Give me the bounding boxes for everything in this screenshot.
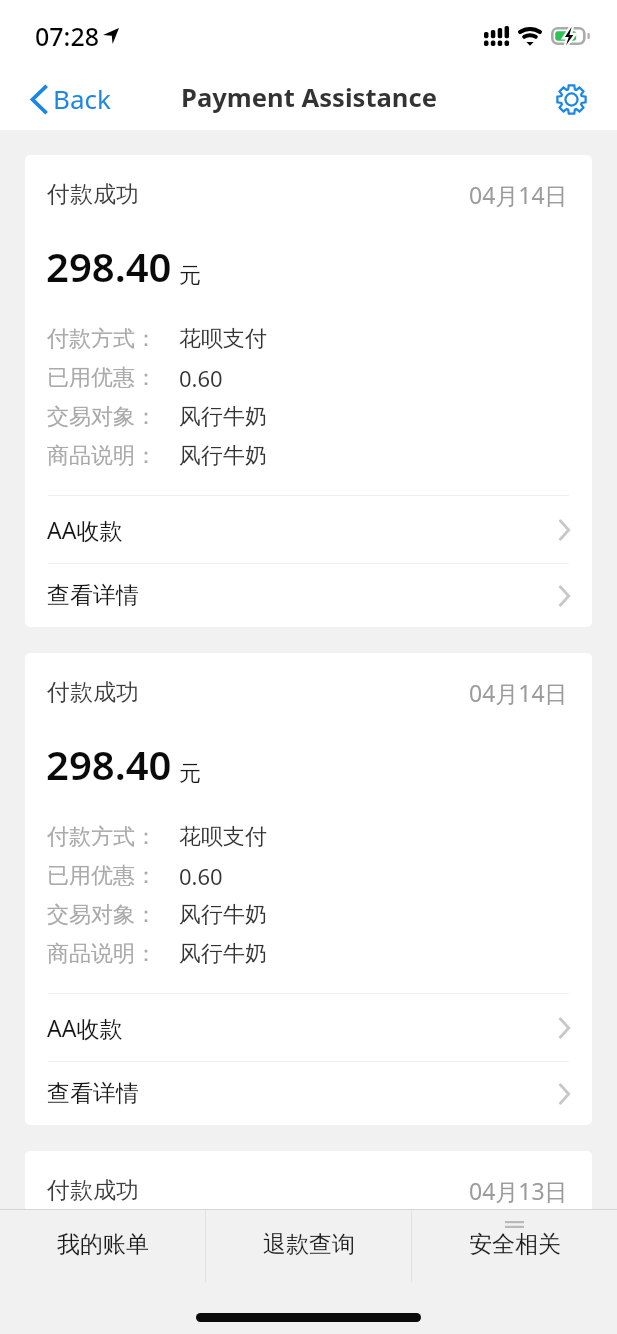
button[interactable]: 查看详情	[25, 564, 592, 627]
staticText: 0.60	[179, 861, 223, 891]
staticText: 风行牛奶	[179, 901, 267, 929]
button[interactable]: AA收款	[25, 496, 592, 563]
staticText: 付款成功	[47, 180, 139, 209]
button[interactable]: Back	[0, 72, 129, 127]
staticText: 付款成功	[47, 678, 139, 707]
button[interactable]: 安全相关	[412, 1210, 617, 1282]
staticText: 商品说明：	[47, 940, 157, 968]
staticText: AA收款	[47, 514, 123, 545]
staticText: 我的账单	[57, 1230, 149, 1259]
staticText: 已用优惠：	[47, 364, 157, 392]
staticText: 298.40	[46, 239, 172, 293]
staticText: Back	[53, 81, 111, 116]
button[interactable]: 退款查询	[206, 1210, 411, 1282]
button[interactable]: AA收款	[25, 994, 592, 1061]
button[interactable]: Settings	[548, 76, 594, 122]
staticText: 已用优惠：	[47, 862, 157, 890]
staticText: 付款方式：	[47, 823, 157, 851]
staticText: 查看详情	[47, 1079, 139, 1108]
staticText: 查看详情	[47, 581, 139, 610]
staticText: 付款方式：	[47, 325, 157, 353]
staticText: 04月14日	[469, 179, 568, 210]
staticText: 风行牛奶	[179, 940, 267, 968]
staticText: 商品说明：	[47, 442, 157, 470]
staticText: 安全相关	[469, 1230, 561, 1259]
staticText: 付款成功	[47, 1176, 139, 1205]
staticText: 07:28	[35, 19, 100, 53]
staticText: 风行牛奶	[179, 442, 267, 470]
button[interactable]: 查看详情	[25, 1062, 592, 1125]
staticText: 花呗支付	[179, 823, 267, 851]
button[interactable]: 我的账单	[0, 1210, 205, 1282]
staticText: AA收款	[47, 1012, 123, 1043]
staticText: 元	[179, 262, 201, 290]
staticText: 交易对象：	[47, 403, 157, 431]
staticText: 04月14日	[469, 677, 568, 708]
staticText: Payment Assistance	[181, 80, 437, 115]
staticText: 交易对象：	[47, 901, 157, 929]
staticText: 0.60	[179, 363, 223, 393]
staticText: 298.40	[46, 737, 172, 791]
staticText: 元	[179, 760, 201, 788]
staticText: 风行牛奶	[179, 403, 267, 431]
staticText: 花呗支付	[179, 325, 267, 353]
staticText: 退款查询	[263, 1230, 355, 1259]
staticText: 04月13日	[469, 1175, 568, 1206]
